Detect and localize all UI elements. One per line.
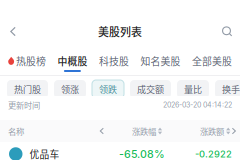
staticText: 换手 bbox=[222, 82, 240, 95]
button[interactable]: 热门股 bbox=[7, 80, 48, 98]
staticText: 涨跌幅 bbox=[132, 125, 156, 137]
staticText: 成交额 bbox=[137, 82, 164, 95]
button[interactable]: 科技股 bbox=[99, 46, 129, 73]
staticText: 名称 bbox=[8, 125, 24, 137]
button[interactable]: Back bbox=[3, 21, 23, 41]
staticText: 全部美股 bbox=[192, 54, 232, 68]
staticText: 热股榜 bbox=[16, 54, 46, 68]
button[interactable]: 换手 bbox=[215, 80, 240, 98]
button[interactable]: 涨跌幅 bbox=[132, 125, 162, 137]
staticText: 优品车 bbox=[29, 147, 59, 160]
staticText: 更新时间 bbox=[8, 99, 40, 111]
button[interactable]: 热股榜 bbox=[8, 46, 46, 73]
button[interactable]: 涨跌额 bbox=[200, 125, 230, 137]
staticText: -65.08% bbox=[119, 147, 165, 160]
staticText: 领跌 bbox=[99, 82, 117, 95]
staticText: 量比 bbox=[184, 82, 202, 95]
button[interactable]: 量比 bbox=[177, 80, 209, 98]
button[interactable]: 领跌 bbox=[92, 80, 124, 98]
staticText: -0.2922 bbox=[195, 148, 232, 160]
button[interactable]: 知名美股 bbox=[140, 46, 180, 73]
button[interactable]: 成交额 bbox=[130, 80, 171, 98]
button[interactable]: 领涨 bbox=[54, 80, 86, 98]
staticText: 科技股 bbox=[99, 54, 129, 68]
staticText: 热门股 bbox=[14, 82, 41, 95]
staticText: 知名美股 bbox=[140, 54, 180, 68]
button[interactable]: 全部美股 bbox=[192, 46, 232, 73]
button[interactable]: Search bbox=[217, 21, 237, 41]
button[interactable]: 优品车 bbox=[0, 142, 240, 160]
staticText: 2026-03-20 04:14:22 bbox=[163, 101, 232, 109]
staticText: 领涨 bbox=[61, 82, 79, 95]
button[interactable]: 中概股 bbox=[57, 46, 87, 73]
staticText: 涨跌额 bbox=[200, 125, 224, 137]
staticText: 美股列表 bbox=[98, 24, 142, 39]
staticText: 中概股 bbox=[57, 54, 87, 68]
